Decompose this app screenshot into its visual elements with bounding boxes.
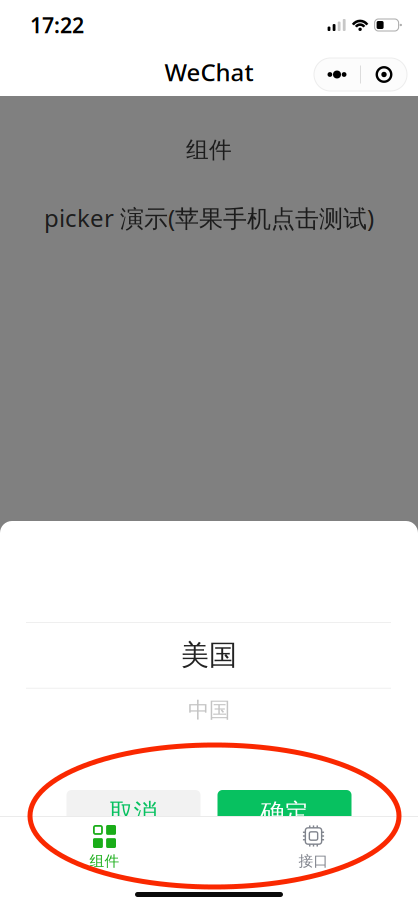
staticText: 中国: [188, 697, 230, 723]
staticText: 17:22: [30, 11, 84, 39]
button[interactable]: Close mini program: [361, 58, 407, 91]
button[interactable]: 确定: [217, 790, 351, 835]
staticText: WeChat: [164, 56, 253, 88]
staticText: 确定: [260, 798, 308, 827]
staticText: 接口: [298, 852, 328, 870]
button[interactable]: More options: [314, 58, 360, 91]
staticText: picker 演示(苹果手机点击测试): [44, 202, 374, 234]
button[interactable]: 接口: [209, 817, 418, 909]
staticText: 取消: [109, 798, 157, 827]
staticText: 美国: [181, 638, 237, 672]
staticText: 组件: [186, 136, 232, 164]
staticText: 组件: [89, 852, 119, 870]
button[interactable]: 组件: [0, 817, 209, 909]
button[interactable]: 取消: [66, 790, 200, 835]
